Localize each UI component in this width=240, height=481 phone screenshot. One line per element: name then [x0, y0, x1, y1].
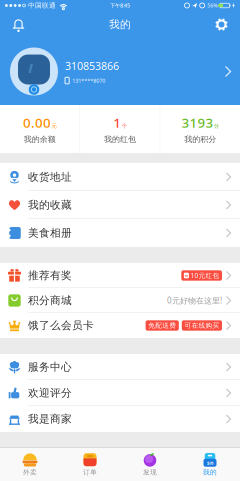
staticText: sn	[207, 459, 213, 466]
staticText: 3193	[181, 114, 213, 131]
staticText: 分	[214, 123, 219, 129]
staticText: 1	[113, 114, 121, 131]
staticText: 可在线购买	[184, 321, 219, 330]
staticText: 服务中心	[28, 360, 72, 373]
staticText: 我是商家	[28, 412, 72, 425]
button[interactable]: 订单	[60, 448, 120, 481]
button[interactable]: 推荐有奖	[0, 263, 240, 288]
button[interactable]: 服务中心	[0, 354, 240, 380]
staticText: 0.00	[23, 114, 51, 131]
staticText: 我的	[109, 18, 131, 31]
button[interactable]: 收货地址	[0, 163, 240, 191]
staticText: 中国联通	[28, 1, 56, 10]
staticText: 发现	[143, 468, 157, 476]
staticText: 我的积分	[184, 134, 216, 144]
staticText: 积分商城	[28, 294, 72, 307]
staticText: 订单	[83, 468, 97, 476]
staticText: 美食相册	[28, 226, 72, 239]
button[interactable]: 欢迎评分	[0, 380, 240, 406]
staticText: 131****8070	[72, 77, 105, 84]
button[interactable]	[0, 17, 25, 31]
button[interactable]: 3193	[160, 105, 240, 153]
staticText: 下午8:45	[110, 2, 130, 9]
staticText: 我的余额	[24, 134, 56, 144]
staticText: 收货地址	[28, 170, 72, 183]
button[interactable]: sn	[180, 448, 240, 481]
button[interactable]: 发现	[120, 448, 180, 481]
staticText: 56%	[207, 2, 217, 9]
button[interactable]: 外卖	[0, 448, 60, 481]
staticText: 饿了么会员卡	[28, 319, 94, 332]
button[interactable]: 美食相册	[0, 219, 240, 247]
button[interactable]: 我是商家	[0, 406, 240, 432]
staticText: 我的	[203, 468, 217, 476]
button[interactable]: 饿了么会员卡	[0, 313, 240, 338]
staticText: 元	[52, 123, 57, 129]
staticText: 外卖	[23, 468, 37, 476]
staticText: 欢迎评分	[28, 386, 72, 399]
staticText: 10元红包	[190, 271, 219, 280]
staticText: 我的收藏	[28, 198, 72, 211]
button[interactable]: 1	[80, 105, 160, 153]
button[interactable]: 310853866	[0, 38, 240, 105]
staticText: 免配送费	[148, 321, 176, 330]
staticText: 310853866	[65, 59, 119, 73]
button[interactable]: 积分商城	[0, 288, 240, 313]
staticText: 0元好物在这里!	[167, 295, 222, 306]
staticText: 我的红包	[104, 134, 136, 144]
button[interactable]: 0.00	[0, 105, 80, 153]
staticText: 个	[122, 123, 127, 129]
button[interactable]: 我的收藏	[0, 191, 240, 219]
button[interactable]	[215, 18, 240, 31]
staticText: 推荐有奖	[28, 269, 72, 282]
